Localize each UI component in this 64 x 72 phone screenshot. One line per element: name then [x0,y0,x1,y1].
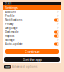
button[interactable]: Notifications [3,18,61,22]
button[interactable]: Language [3,26,61,30]
staticText: Dark mode [5,30,19,34]
staticText: Storage [5,38,15,42]
button[interactable]: Storage [3,38,61,42]
button[interactable]: Haptics [3,34,61,38]
button[interactable]: Get the app [4,57,60,62]
staticText: Advanced options [12,65,37,68]
staticText: Haptics [5,34,14,38]
button[interactable]: Profile [3,14,61,18]
button[interactable]: Privacy [3,22,61,26]
staticText: > [57,14,59,18]
staticText: Auto-update [5,42,23,46]
staticText: Notifications [5,18,22,22]
staticText: > [57,38,59,42]
button[interactable]: Account [3,10,61,14]
staticText: > [57,22,59,26]
staticText: Get the app [22,57,41,62]
button[interactable]: Dark mode [3,30,61,34]
staticText: > [57,10,59,14]
staticText: > [57,26,59,30]
button[interactable]: Auto-update [3,42,61,46]
staticText: 9:41 [5,2,12,5]
staticText: Privacy [5,22,13,26]
staticText: Profile [5,14,15,18]
button[interactable]: Continue [5,49,59,54]
staticText: Settings [5,5,18,10]
staticText: Account [5,10,16,14]
staticText: NEW [5,65,10,68]
staticText: Language [5,26,18,30]
staticText: Continue [24,49,39,54]
